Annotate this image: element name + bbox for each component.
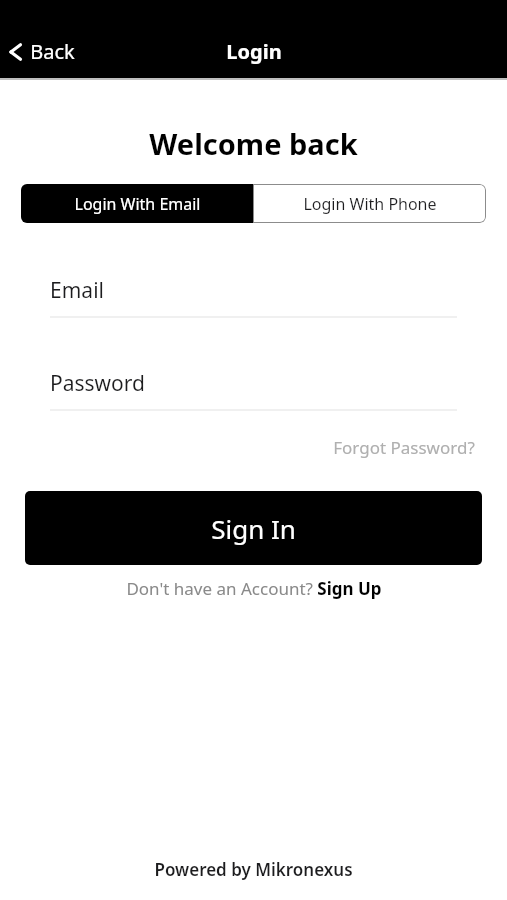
button[interactable]: Password [50, 369, 457, 411]
staticText: Forgot Password? [333, 436, 475, 459]
button[interactable]: Sign In [25, 491, 482, 565]
staticText: Don't have an Account? Sign Up [126, 577, 382, 600]
staticText: Sign In [211, 511, 296, 546]
button[interactable]: Don't have an Account? Sign Up [122, 575, 386, 602]
button[interactable]: Login With Phone [253, 184, 486, 223]
staticText: Login With Email [74, 193, 201, 215]
staticText: Email [50, 276, 104, 305]
button[interactable]: Forgot Password? [331, 433, 477, 462]
button[interactable]: Back [0, 32, 87, 71]
staticText: Powered by Mikronexus [154, 858, 353, 881]
button[interactable]: Email [50, 276, 457, 318]
staticText: Password [50, 369, 145, 398]
staticText: Welcome back [149, 124, 358, 163]
staticText: Login [226, 38, 282, 65]
staticText: Login With Phone [303, 193, 437, 215]
button[interactable]: Login With Email [21, 184, 253, 223]
staticText: Back [30, 38, 75, 65]
